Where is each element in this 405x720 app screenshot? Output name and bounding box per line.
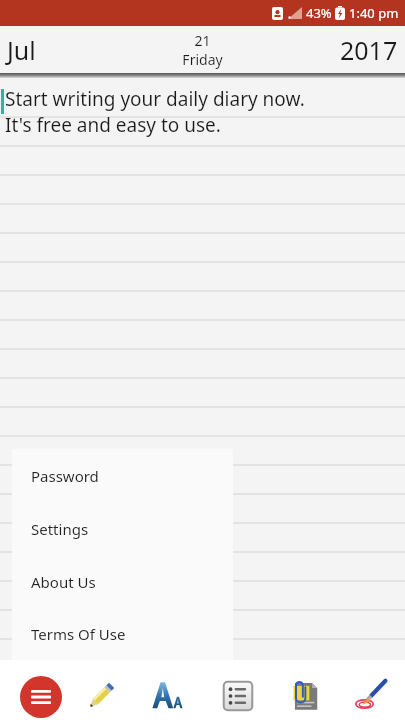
staticText: 1:40 pm: [349, 4, 399, 22]
staticText: Password: [31, 466, 99, 486]
staticText: Terms Of Use: [31, 624, 126, 644]
staticText: Settings: [31, 519, 89, 539]
staticText: Start writing your daily diary now.: [5, 86, 305, 112]
button[interactable]: 21: [172, 31, 233, 69]
staticText: 43%: [306, 4, 332, 22]
button[interactable]: Draw: [348, 673, 394, 719]
button[interactable]: Attach file: [282, 673, 328, 719]
button[interactable]: Settings: [12, 502, 233, 555]
button[interactable]: Menu: [20, 676, 62, 718]
staticText: 21: [194, 31, 211, 50]
staticText: About Us: [31, 572, 96, 592]
button[interactable]: Edit: [78, 673, 124, 719]
staticText: Friday: [182, 50, 223, 69]
button[interactable]: About Us: [12, 555, 233, 608]
button[interactable]: 2017: [340, 33, 405, 67]
button[interactable]: Jul: [0, 33, 36, 67]
button[interactable]: Font size: [146, 673, 192, 719]
staticText: It's free and easy to use.: [5, 112, 221, 138]
button[interactable]: Checklist: [215, 673, 261, 719]
button[interactable]: Terms Of Use: [12, 608, 233, 660]
button[interactable]: Password: [12, 449, 233, 502]
